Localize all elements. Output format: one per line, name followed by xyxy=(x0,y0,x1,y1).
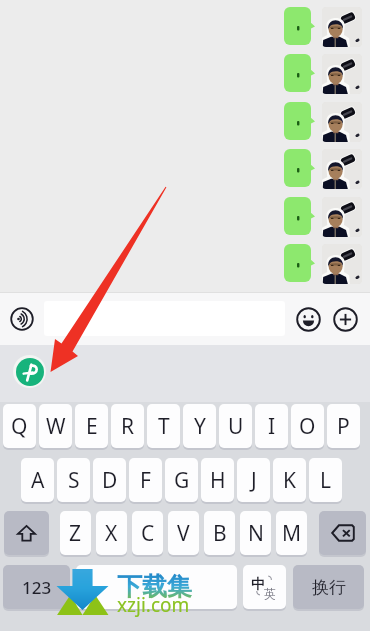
button[interactable]: Contact avatar xyxy=(322,197,362,237)
button[interactable] xyxy=(4,511,49,555)
staticText: I xyxy=(268,412,276,441)
button[interactable]: S xyxy=(57,458,90,502)
staticText: N xyxy=(248,519,264,548)
button[interactable]: R xyxy=(111,404,144,448)
staticText: X xyxy=(105,519,118,548)
button[interactable]: V xyxy=(168,511,199,555)
staticText: E xyxy=(86,412,98,441)
staticText: R xyxy=(121,412,135,441)
staticText: B xyxy=(213,519,227,548)
button[interactable]: Contact avatar xyxy=(322,7,362,47)
button[interactable]: Contact avatar xyxy=(322,149,362,189)
staticText: xzji.com xyxy=(117,592,190,618)
staticText: Z xyxy=(69,519,82,548)
staticText: Q xyxy=(11,412,28,441)
button[interactable]: K xyxy=(273,458,306,502)
button[interactable]: Contact avatar xyxy=(322,102,362,142)
button[interactable]: 中 xyxy=(243,565,286,609)
button[interactable]: U xyxy=(219,404,252,448)
button[interactable]: Q xyxy=(3,404,36,448)
staticText: K xyxy=(283,466,296,495)
staticText: T xyxy=(158,412,170,441)
button[interactable]: More functions xyxy=(331,305,359,333)
staticText: W xyxy=(46,412,66,441)
button[interactable]: I xyxy=(255,404,288,448)
staticText: D xyxy=(102,466,118,495)
button[interactable]: Contact avatar xyxy=(322,244,362,284)
staticText: P xyxy=(337,412,350,441)
button[interactable] xyxy=(44,301,285,336)
button[interactable]: T xyxy=(147,404,180,448)
staticText: V xyxy=(177,519,190,548)
staticText: M xyxy=(282,519,302,548)
staticText: S xyxy=(68,466,80,495)
button[interactable]: Contact avatar xyxy=(322,54,362,94)
staticText: 中 xyxy=(251,576,265,594)
button[interactable]: E xyxy=(75,404,108,448)
button[interactable]: J xyxy=(237,458,270,502)
staticText: A xyxy=(31,466,45,495)
button[interactable] xyxy=(319,511,366,555)
staticText: 123 xyxy=(22,576,52,599)
button[interactable]: H xyxy=(201,458,234,502)
button[interactable]: G xyxy=(165,458,198,502)
button[interactable]: L xyxy=(309,458,342,502)
staticText: H xyxy=(210,466,226,495)
staticText: U xyxy=(228,412,244,441)
button[interactable]: D xyxy=(93,458,126,502)
button[interactable]: Y xyxy=(183,404,216,448)
button[interactable]: A xyxy=(21,458,54,502)
staticText: L xyxy=(320,466,332,495)
staticText: C xyxy=(141,519,155,548)
button[interactable]: F xyxy=(129,458,162,502)
button[interactable]: X xyxy=(96,511,127,555)
staticText: Y xyxy=(194,412,206,441)
button[interactable] xyxy=(76,565,237,609)
button[interactable]: Z xyxy=(60,511,91,555)
staticText: 英 xyxy=(264,586,276,601)
button[interactable]: N xyxy=(240,511,271,555)
button[interactable]: P xyxy=(327,404,360,448)
staticText: F xyxy=(140,466,151,495)
button[interactable]: 123 xyxy=(3,565,70,609)
button[interactable]: M xyxy=(276,511,307,555)
staticText: J xyxy=(251,466,257,495)
button[interactable]: B xyxy=(204,511,235,555)
button[interactable]: W xyxy=(39,404,72,448)
button[interactable]: Emoji xyxy=(294,305,322,333)
button[interactable]: Mini program xyxy=(13,355,46,388)
button[interactable]: O xyxy=(291,404,324,448)
staticText: 换行 xyxy=(312,577,346,598)
staticText: G xyxy=(174,466,190,495)
button[interactable]: Voice input xyxy=(8,305,36,333)
staticText: 下载集 xyxy=(117,571,192,602)
button[interactable]: 换行 xyxy=(293,565,364,609)
staticText: O xyxy=(299,412,316,441)
button[interactable]: C xyxy=(132,511,163,555)
